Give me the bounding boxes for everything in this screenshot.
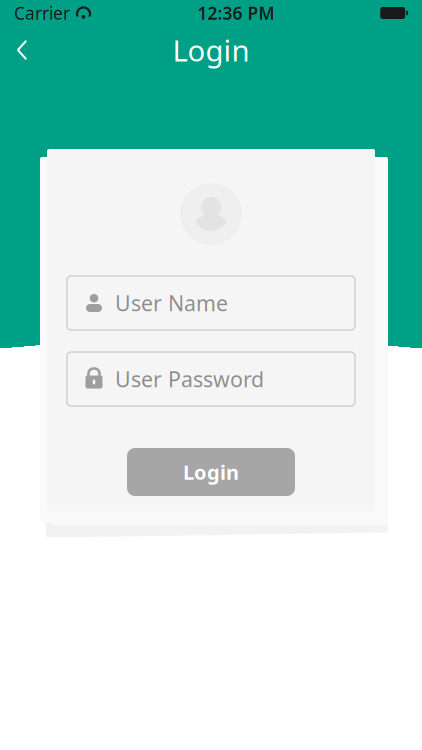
button[interactable]: User Name [67,276,355,330]
button[interactable]: User Password [67,352,355,406]
staticText: 12:36 PM [198,1,275,24]
staticText: Login [172,30,249,69]
staticText: User Password [115,365,264,393]
staticText: User Name [115,289,228,317]
button[interactable]: Back [0,28,44,72]
button[interactable]: Login [127,448,295,496]
staticText: Login [183,459,239,485]
staticText: Carrier [14,1,70,24]
